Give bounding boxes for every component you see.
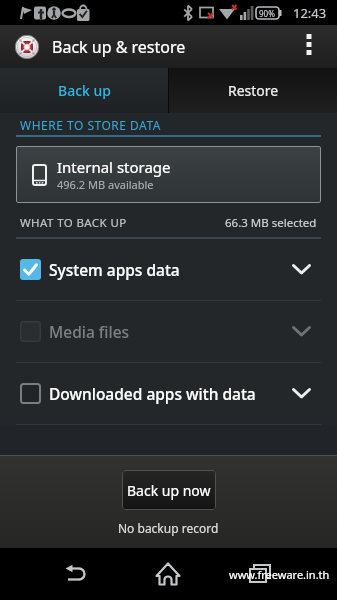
staticText: Downloaded apps with data: [49, 383, 256, 404]
staticText: Internal storage: [57, 157, 171, 177]
button[interactable]: Back up: [0, 68, 168, 113]
button[interactable]: Restore: [169, 68, 337, 113]
button[interactable]: Media files: [0, 301, 337, 362]
button[interactable]: [47, 548, 103, 600]
staticText: Restore: [228, 81, 279, 100]
staticText: Back up now: [127, 481, 211, 500]
staticText: 90%: [259, 8, 275, 19]
staticText: 12:43: [293, 4, 327, 22]
button[interactable]: Downloaded apps with data: [0, 363, 337, 424]
button[interactable]: [232, 548, 288, 600]
button[interactable]: [140, 548, 196, 600]
staticText: Back up: [58, 81, 111, 100]
button[interactable]: [291, 25, 327, 68]
staticText: No backup record: [118, 520, 219, 536]
staticText: www.freeware.in.th: [229, 567, 330, 582]
staticText: System apps data: [49, 259, 180, 280]
staticText: WHERE TO STORE DATA: [20, 117, 161, 133]
button[interactable]: Back up now: [123, 471, 215, 509]
staticText: Media files: [49, 321, 130, 342]
staticText: 66.3 MB selected: [225, 215, 317, 231]
button[interactable]: System apps data: [0, 239, 337, 300]
staticText: Back up & restore: [52, 36, 186, 58]
staticText: WHAT TO BACK UP: [20, 215, 127, 231]
staticText: 496.2 MB available: [57, 177, 154, 192]
button[interactable]: Internal storage: [16, 146, 321, 203]
